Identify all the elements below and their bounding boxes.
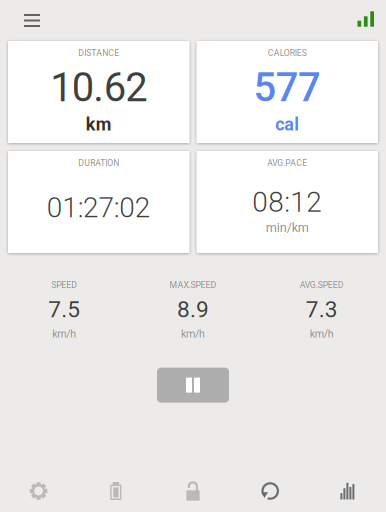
button[interactable]: Menu [0,1,54,40]
staticText: km/h [52,328,76,340]
staticText: DURATION [78,158,119,168]
staticText: AVG.SPEED [300,280,344,290]
staticText: min/km [266,220,309,235]
staticText: SPEED [51,280,77,290]
staticText: MAX.SPEED [169,280,216,290]
staticText: cal [275,114,299,135]
button[interactable]: Battery [77,482,154,500]
button[interactable]: Reset [232,482,309,500]
staticText: 08:12 [252,186,322,219]
button[interactable]: Settings [0,482,77,500]
staticText: CALORIES [268,48,307,58]
button[interactable]: Lock screen [154,481,232,501]
staticText: km [86,114,112,135]
staticText: km/h [310,328,334,340]
staticText: AVG.PACE [267,158,307,168]
staticText: 577 [253,64,321,111]
button[interactable]: Pause [157,368,229,403]
staticText: 01:27:02 [47,191,151,224]
button[interactable]: Statistics [309,482,386,499]
staticText: km/h [181,328,205,340]
staticText: 8.9 [177,296,209,323]
staticText: 7.3 [306,296,338,323]
staticText: DISTANCE [78,48,119,58]
staticText: 10.62 [50,64,147,111]
staticText: 7.5 [48,296,80,323]
